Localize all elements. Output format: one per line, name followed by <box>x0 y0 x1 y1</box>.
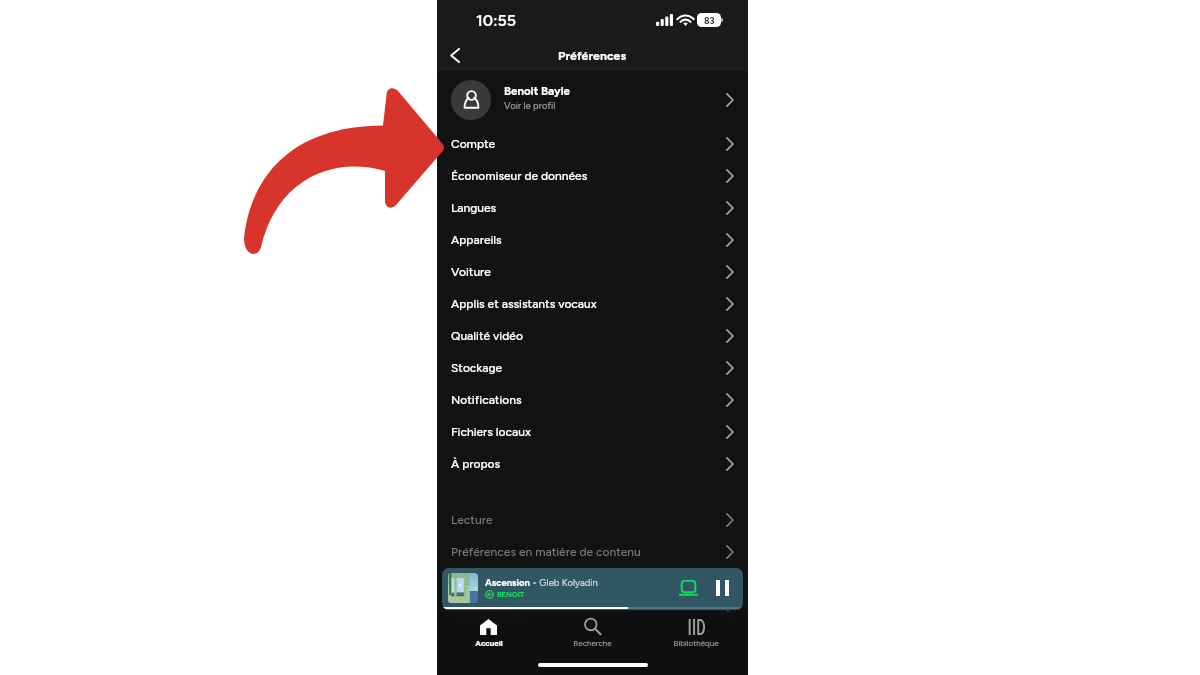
button[interactable]: Bibliothèque <box>644 612 748 654</box>
staticText: Applis et assistants vocaux <box>451 297 726 311</box>
button[interactable]: Back <box>437 40 471 71</box>
staticText: Économiseur de données <box>451 169 726 183</box>
button[interactable]: Appareils <box>437 224 748 256</box>
staticText: À propos <box>451 457 726 471</box>
staticText: Qualité vidéo <box>451 329 726 343</box>
button[interactable]: Qualité vidéo <box>437 320 748 352</box>
button[interactable]: Compte <box>437 128 748 160</box>
button[interactable]: Applis et assistants vocaux <box>437 288 748 320</box>
button[interactable]: Recherche <box>540 612 644 654</box>
staticText: Voir le profil <box>504 100 556 111</box>
button[interactable]: Stockage <box>437 352 748 384</box>
staticText: Accueil <box>475 638 503 648</box>
staticText: Fichiers locaux <box>451 425 726 439</box>
staticText: Qualité sonore <box>451 609 726 623</box>
staticText: Langues <box>451 201 726 215</box>
staticText: BENOIT <box>497 590 525 599</box>
staticText: Compte <box>451 137 726 151</box>
staticText: Voiture <box>451 265 726 279</box>
button[interactable]: Économiseur de données <box>437 160 748 192</box>
button[interactable]: Explicit <box>437 568 748 600</box>
staticText: Stockage <box>451 361 726 375</box>
staticText: Ascension <box>485 577 530 588</box>
button[interactable]: Ascension <box>442 568 743 607</box>
staticText: Préférences en matière de contenu <box>451 545 726 559</box>
staticText: Lecture <box>451 513 726 527</box>
button[interactable]: Qualité sonore <box>437 600 748 632</box>
staticText: • Gleb Kolyadin <box>530 577 598 588</box>
button[interactable]: Benoit Bayle <box>437 71 748 128</box>
staticText: Notifications <box>451 393 726 407</box>
button[interactable]: À propos <box>437 448 748 480</box>
staticText: Explicit <box>451 577 726 591</box>
button[interactable]: Notifications <box>437 384 748 416</box>
staticText: Appareils <box>451 233 726 247</box>
staticText: Bibliothèque <box>673 638 719 648</box>
button[interactable]: Fichiers locaux <box>437 416 748 448</box>
staticText: 83 <box>704 15 715 26</box>
staticText: 10:55 <box>476 11 517 30</box>
button[interactable]: Voiture <box>437 256 748 288</box>
staticText: Préférences <box>558 48 627 63</box>
staticText: Benoit Bayle <box>504 84 570 98</box>
button[interactable]: Pause <box>709 572 735 604</box>
button[interactable]: Accueil <box>437 612 540 654</box>
staticText: Recherche <box>573 638 612 648</box>
button[interactable]: Langues <box>437 192 748 224</box>
button[interactable]: Lecture <box>437 504 748 536</box>
button[interactable]: Connect to a device <box>669 572 708 604</box>
button[interactable]: Préférences en matière de contenu <box>437 536 748 568</box>
